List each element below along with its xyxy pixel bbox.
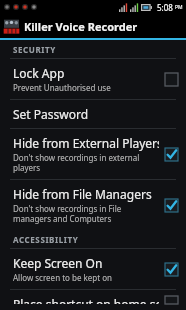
staticText: Don't show recordings in external player… [13, 152, 159, 173]
button[interactable]: Keep Screen On [0, 249, 186, 289]
button[interactable]: Place shortcut on home screen [0, 290, 186, 310]
staticText: ACCESSIBILITY [13, 234, 79, 245]
staticText: Place shortcut on home screen [13, 296, 159, 304]
staticText: Prevent Unauthorised use [13, 82, 111, 93]
button[interactable]: Checked [165, 199, 178, 212]
staticText: PM [175, 4, 183, 11]
staticText: Killer Voice Recorder [24, 19, 138, 34]
button[interactable]: Hide from File Managers [0, 180, 186, 230]
button[interactable]: Set Password [0, 100, 186, 128]
staticText: Lock App [13, 65, 65, 81]
button[interactable]: Checked [165, 148, 178, 161]
staticText: 5:08 [157, 2, 173, 13]
staticText: Hide from External Players [13, 135, 159, 151]
button[interactable]: Unchecked [165, 296, 178, 304]
button[interactable]: Checked [165, 263, 178, 276]
staticText: Set Password [13, 106, 89, 122]
staticText: Don't show recordings in File managers a… [13, 203, 159, 224]
staticText: Hide from File Managers [13, 186, 152, 202]
button[interactable]: Unchecked [165, 73, 178, 86]
staticText: Allow screen to be kept on [13, 272, 112, 283]
staticText: SECURITY [13, 44, 56, 55]
button[interactable]: Hide from External Players [0, 129, 186, 179]
staticText: Keep Screen On [13, 255, 103, 271]
button[interactable]: Lock App [0, 59, 186, 99]
